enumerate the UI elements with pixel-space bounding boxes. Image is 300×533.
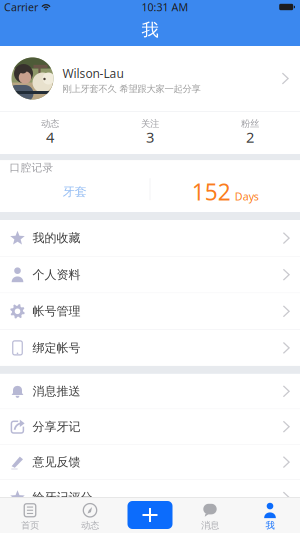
staticText: 帐号管理	[32, 304, 80, 319]
button[interactable]: 绑定帐号	[0, 330, 300, 366]
staticText: 2	[246, 127, 254, 147]
staticText: 我的收藏	[32, 231, 80, 245]
staticText: 动态	[81, 520, 99, 531]
staticText: 给牙记评分	[32, 490, 92, 505]
staticText: 刚上牙套不久 希望跟大家一起分享	[62, 83, 200, 95]
staticText: 分享牙记	[32, 419, 80, 434]
staticText: 消息	[201, 520, 219, 531]
staticText: 消息推送	[32, 384, 80, 399]
staticText: 3	[146, 127, 154, 147]
staticText: 关注	[141, 118, 159, 129]
staticText: Carrier	[4, 0, 38, 14]
button[interactable]: 帐号管理	[0, 293, 300, 329]
button[interactable]: 意见反馈	[0, 445, 300, 479]
staticText: 首页	[21, 520, 39, 531]
button[interactable]: 粉丝	[200, 112, 300, 154]
button[interactable]: Wilson-Lau	[0, 46, 300, 111]
button[interactable]: 关注	[100, 112, 200, 154]
button[interactable]: 个人资料	[0, 257, 300, 293]
button[interactable]: 我的收藏	[0, 220, 300, 256]
button[interactable]: 首页	[0, 497, 60, 533]
button[interactable]: 动态	[60, 497, 120, 533]
staticText: 牙套	[63, 184, 87, 199]
staticText: 10:31 AM	[142, 0, 189, 14]
button[interactable]: 给牙记评分	[0, 480, 300, 515]
button[interactable]: 我	[240, 497, 300, 533]
staticText: 个人资料	[32, 267, 80, 282]
staticText: 动态	[41, 118, 59, 129]
button[interactable]: 分享牙记	[0, 409, 300, 444]
staticText: Days	[235, 189, 259, 203]
button[interactable]: 动态	[0, 112, 100, 154]
button[interactable]: 消息	[180, 497, 240, 533]
staticText: Wilson-Lau	[62, 65, 123, 81]
button[interactable]: Add	[127, 497, 172, 533]
button[interactable]: 消息推送	[0, 374, 300, 409]
staticText: 152	[192, 177, 231, 207]
staticText: 4	[46, 127, 54, 147]
staticText: 绑定帐号	[32, 340, 80, 355]
staticText: 我	[265, 520, 274, 531]
staticText: 意见反馈	[32, 455, 80, 469]
staticText: 粉丝	[241, 118, 259, 129]
staticText: 口腔记录	[9, 161, 53, 174]
staticText: 我	[141, 19, 158, 41]
